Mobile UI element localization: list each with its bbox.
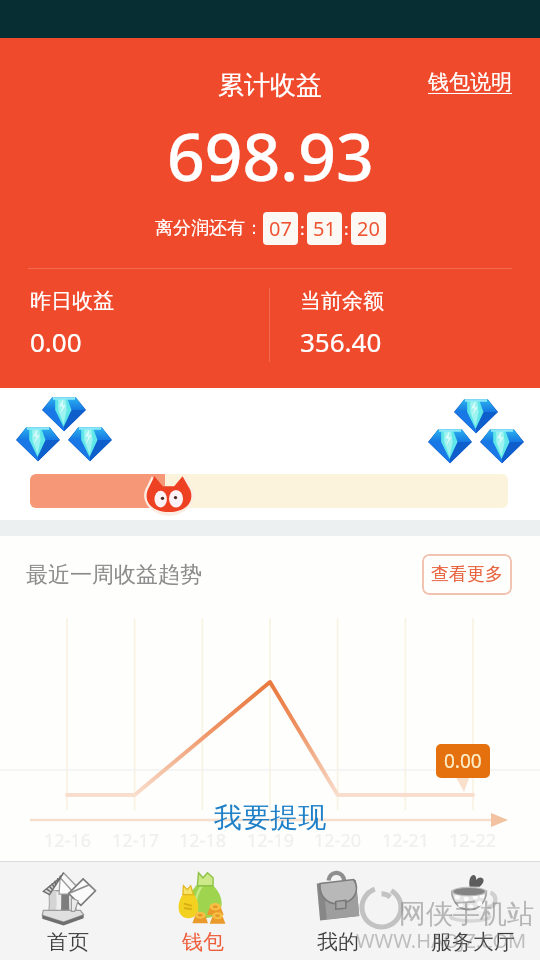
staticText: 51 [313,215,336,242]
staticText: 昨日收益 [30,288,114,314]
staticText: 20 [357,215,380,242]
staticText: 356.40 [300,324,382,359]
staticText: 累计收益 [218,69,322,102]
staticText: 最近一周收益趋势 [26,561,202,589]
button[interactable]: 服务大厅 [405,862,540,960]
staticText: 网侠手机站 [399,897,534,931]
staticText: 12-18 [179,828,226,853]
staticText: 07 [269,215,292,242]
staticText: WWW.HAOJZ.COM [356,927,527,954]
staticText: 12-21 [382,828,429,853]
staticText: 首页 [47,929,89,955]
staticText: 12-20 [314,828,361,853]
staticText: 12-16 [44,828,91,853]
staticText: 当前余额 [300,288,384,314]
staticText: 钱包 [182,929,224,955]
staticText: 12-19 [247,828,294,853]
staticText: 12-22 [449,828,496,853]
staticText: 12-17 [112,828,159,853]
staticText: : [344,217,349,240]
staticText: 0.00 [444,748,482,774]
button[interactable]: 钱包说明 [428,69,512,95]
button[interactable]: 钱包 [135,862,270,960]
staticText: : [300,217,305,240]
button[interactable]: 我要提现 [214,800,326,835]
staticText: 服务大厅 [431,929,515,955]
button[interactable]: 首页 [0,862,135,960]
staticText: 离分润还有： [155,217,263,240]
staticText: 我的 [317,929,359,955]
button[interactable]: 查看更多 [422,554,512,595]
button[interactable]: 我的 [270,862,405,960]
staticText: 0.00 [30,324,82,359]
staticText: 查看更多 [431,563,503,586]
staticText: 698.93 [167,110,374,200]
